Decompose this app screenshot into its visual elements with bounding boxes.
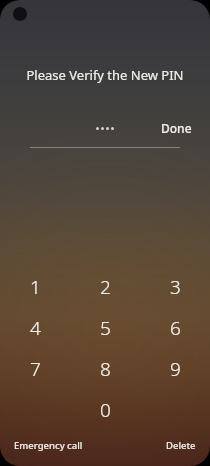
button[interactable]: 5 — [70, 307, 140, 348]
button[interactable]: 9 — [140, 348, 210, 389]
staticText: 7 — [30, 356, 41, 382]
staticText: 3 — [170, 274, 181, 300]
button[interactable]: 3 — [140, 266, 210, 307]
staticText: 0 — [100, 397, 111, 423]
staticText: Done — [161, 120, 192, 136]
button[interactable]: Emergency call — [14, 439, 83, 452]
staticText: Please Verify the New PIN — [0, 66, 210, 84]
button[interactable]: 8 — [70, 348, 140, 389]
button[interactable]: 2 — [70, 266, 140, 307]
staticText: 1 — [30, 274, 41, 300]
staticText: 8 — [100, 356, 111, 382]
staticText: 2 — [100, 274, 111, 300]
button[interactable]: 1 — [0, 266, 70, 307]
staticText: 6 — [170, 315, 181, 341]
button[interactable]: Done — [161, 120, 192, 136]
staticText: Delete — [166, 439, 196, 452]
staticText: 9 — [170, 356, 181, 382]
button[interactable]: 6 — [140, 307, 210, 348]
button[interactable]: 0 — [70, 389, 140, 430]
staticText: Emergency call — [14, 439, 83, 452]
staticText: 4 — [30, 315, 41, 341]
button[interactable]: 4 — [0, 307, 70, 348]
button[interactable]: Delete — [166, 439, 196, 452]
button[interactable]: 7 — [0, 348, 70, 389]
staticText: 5 — [100, 315, 111, 341]
